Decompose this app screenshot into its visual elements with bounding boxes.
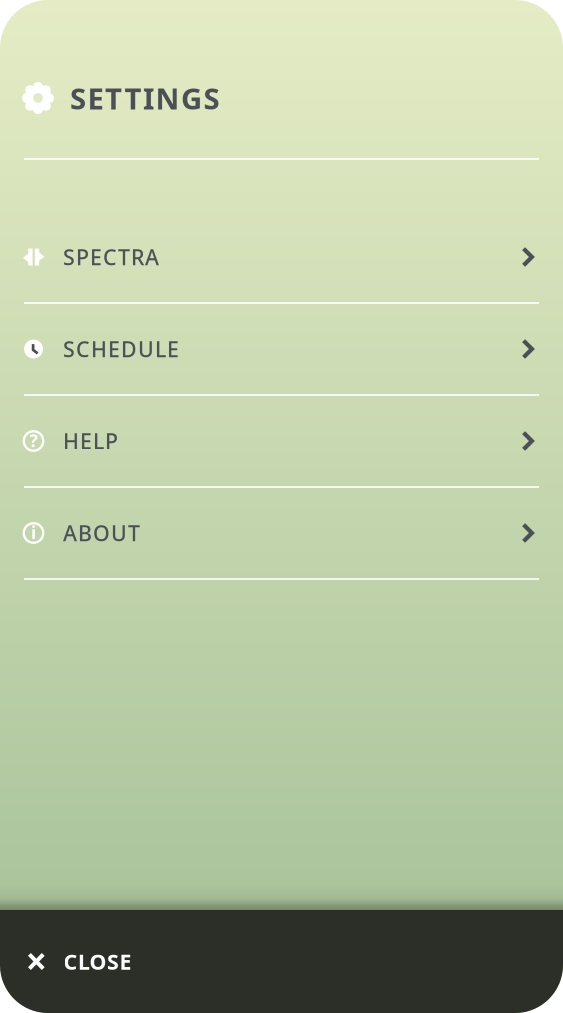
staticText: i [31,521,36,544]
button[interactable]: SCHEDULE [0,304,563,394]
staticText: SCHEDULE [63,335,179,363]
staticText: CLOSE [64,947,132,976]
staticText: SPECTRA [63,243,159,271]
staticText: ABOUT [63,519,140,547]
button[interactable]: SPECTRA [0,212,563,302]
staticText: HELP [63,427,118,455]
button[interactable]: ? [0,396,563,486]
button[interactable]: CLOSE [0,910,563,1013]
staticText: SETTINGS [70,78,219,117]
staticText: ? [29,429,37,452]
button[interactable]: i [0,488,563,578]
